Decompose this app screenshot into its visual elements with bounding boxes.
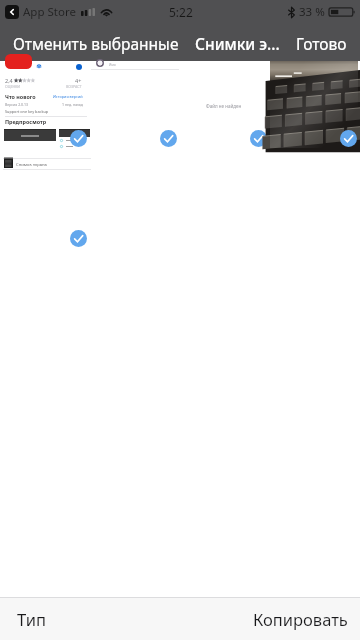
button[interactable]: Файл не найден [180,61,268,148]
staticText: ОЦЕНКИ [5,84,21,89]
staticText: Версия 2.0.13 [5,102,29,107]
staticText: 4+ [75,77,82,84]
staticText: 33 % [299,4,325,20]
button[interactable]: Back to App Store [5,5,19,19]
staticText: Снимок экрана [16,162,47,168]
button[interactable]: Готово [292,33,360,54]
staticText: 2,4 [5,77,13,84]
staticText: Имя [109,63,116,67]
staticText: Тип [17,608,46,630]
button[interactable]: Копировать [243,598,360,640]
staticText: Готово [296,33,347,54]
staticText: История версий [53,94,83,99]
staticText: 5:22 [169,4,193,20]
staticText: Что нового [5,93,36,100]
staticText: Копировать [253,608,348,630]
button[interactable]: Отменить выбранные [0,33,183,54]
staticText: Support one key backup [5,109,49,114]
staticText: Снимки э... [195,33,280,54]
button[interactable]: Имя [90,61,178,148]
staticText: App Store [23,4,76,20]
button[interactable]: Тип [0,598,56,640]
button[interactable]: Снимок экрана [0,157,88,248]
staticText: ВОЗРАСТ [66,84,82,89]
staticText: Файл не найден [206,103,242,109]
button[interactable] [270,61,358,148]
staticText: 1 нед. назад [62,102,83,107]
button[interactable]: 2,4 [0,61,88,148]
staticText: Предпросмотр [5,118,47,125]
staticText: Отменить выбранные [13,33,179,54]
